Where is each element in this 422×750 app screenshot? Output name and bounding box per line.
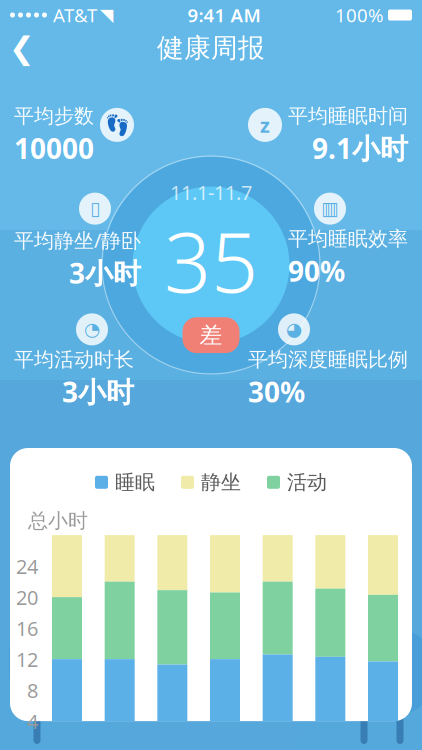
staticText: 90% <box>288 252 345 289</box>
staticText: 平均深度睡眠比例 <box>248 347 408 372</box>
staticText: ◔ <box>84 319 100 340</box>
staticText: ❮ <box>9 31 35 65</box>
staticText: 8 <box>27 677 38 703</box>
staticText: 👣 <box>104 113 129 136</box>
button[interactable]: Back <box>0 26 44 70</box>
staticText: 4 <box>27 708 38 734</box>
staticText: z <box>260 112 270 138</box>
staticText: 9.1小时 <box>312 129 408 167</box>
staticText: 差 <box>199 321 222 349</box>
staticText: 平均睡眠效率 <box>288 227 408 251</box>
staticText: ◥ <box>100 5 113 25</box>
staticText: 35 <box>164 205 258 315</box>
staticText: 16 <box>16 615 38 641</box>
staticText: 3小时 <box>62 373 134 410</box>
staticText: 30% <box>248 373 305 410</box>
staticText: ▯ <box>90 198 100 219</box>
staticText: 平均静坐/静卧 <box>14 227 141 253</box>
staticText: 平均睡眠时间 <box>288 104 408 128</box>
staticText: 平均活动时长 <box>14 347 134 372</box>
staticText: ▥ <box>321 198 339 219</box>
staticText: 24 <box>16 553 38 579</box>
staticText: 20 <box>16 584 38 610</box>
staticText: AT&T <box>53 3 97 27</box>
staticText: 3小时 <box>69 254 141 291</box>
staticText: 总小时 <box>28 509 88 533</box>
staticText: 9:41 AM <box>187 3 260 27</box>
staticText: 11.1-11.7 <box>170 179 252 205</box>
staticText: 100% <box>335 3 384 27</box>
staticText: 活动 <box>287 470 327 495</box>
staticText: 健康周报 <box>157 32 265 64</box>
staticText: 平均步数 <box>14 104 94 128</box>
staticText: ◕ <box>286 319 302 340</box>
staticText: 12 <box>16 646 38 672</box>
staticText: 静坐 <box>201 470 241 495</box>
staticText: 睡眠 <box>115 470 155 495</box>
staticText: 10000 <box>14 129 94 167</box>
